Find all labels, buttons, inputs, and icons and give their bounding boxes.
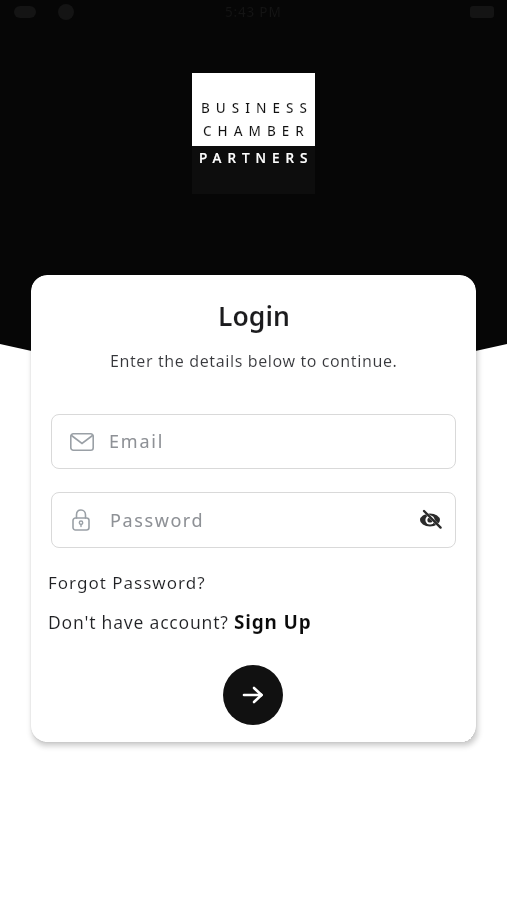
- staticText: CHAMBER: [203, 122, 310, 140]
- staticText: Enter the details below to continue.: [110, 350, 398, 372]
- button[interactable]: Password: [51, 492, 456, 548]
- staticText: PARTNERS: [199, 149, 314, 167]
- button[interactable]: Forgot Password?: [48, 571, 206, 594]
- staticText: BUSINESS: [201, 99, 313, 117]
- button[interactable]: Don't have account? Sign Up: [48, 609, 312, 635]
- button[interactable]: Email: [51, 414, 456, 469]
- staticText: 5:43 PM: [225, 3, 282, 21]
- button[interactable]: [406, 496, 454, 544]
- button[interactable]: [223, 665, 283, 725]
- staticText: Password: [110, 508, 406, 533]
- staticText: Login: [218, 298, 290, 334]
- staticText: Email: [109, 429, 165, 454]
